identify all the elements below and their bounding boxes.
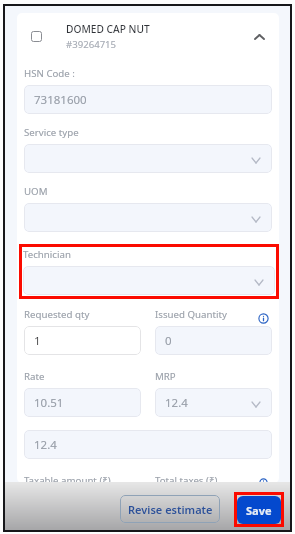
staticText: MRP: [155, 370, 176, 383]
button[interactable]: Save: [237, 496, 281, 524]
staticText: UOM: [24, 185, 48, 198]
button[interactable]: 1: [24, 326, 141, 355]
staticText: Requested qty: [24, 308, 90, 321]
button[interactable]: Revise estimate: [120, 495, 220, 523]
button[interactable]: [24, 203, 272, 232]
staticText: DOMED CAP NUT: [66, 22, 150, 36]
staticText: Rate: [24, 370, 45, 383]
staticText: HSN Code :: [24, 67, 75, 80]
staticText: Service type: [24, 126, 79, 139]
staticText: Save: [246, 503, 272, 518]
staticText: Technician: [23, 248, 71, 261]
button[interactable]: 0: [155, 326, 272, 355]
staticText: Total taxes (₹): [155, 474, 218, 483]
staticText: 1: [34, 333, 41, 349]
staticText: Revise estimate: [128, 502, 213, 517]
button[interactable]: 73181600: [24, 85, 272, 114]
button[interactable]: DOMED CAP NUT: [17, 13, 279, 56]
button[interactable]: [24, 144, 272, 173]
button[interactable]: 12.4: [155, 388, 272, 417]
staticText: 73181600: [34, 92, 87, 108]
staticText: #39264715: [66, 38, 117, 51]
staticText: Taxable amount (₹): [24, 474, 111, 483]
staticText: Issued Quantity: [155, 308, 227, 321]
button[interactable]: [23, 266, 275, 295]
staticText: 12.4: [165, 395, 188, 411]
other: Information: [258, 313, 269, 324]
other: Information: [258, 478, 269, 483]
button[interactable]: 10.51: [24, 388, 141, 417]
staticText: 12.4: [34, 437, 57, 453]
other: Collapse: [255, 35, 264, 39]
staticText: 0: [165, 333, 172, 349]
button[interactable]: 12.4: [24, 430, 272, 459]
staticText: 10.51: [34, 395, 64, 411]
